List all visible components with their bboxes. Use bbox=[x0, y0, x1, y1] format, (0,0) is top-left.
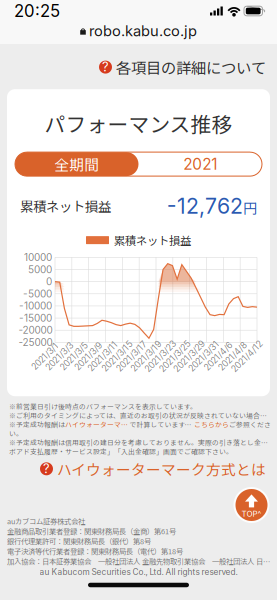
staticText: au Kabucom Securities Co., Ltd. All righ… bbox=[39, 567, 237, 577]
staticText: ハイウォーターマーク方式 bbox=[65, 419, 129, 429]
staticText: -12,762 bbox=[167, 193, 243, 219]
staticText: 2021/3/3 bbox=[42, 351, 77, 362]
staticText: 5000 bbox=[28, 263, 52, 275]
button[interactable]: 2021 bbox=[138, 152, 262, 176]
staticText: パフォーマンス推移 bbox=[44, 108, 232, 138]
staticText: ※ご利用のタイミングによっては、直近のお取引の状況が反映されていない場合がありま… bbox=[9, 410, 271, 420]
staticText: -20000 bbox=[18, 324, 52, 336]
staticText: 2021/3/11 bbox=[84, 351, 122, 362]
staticText: い。 bbox=[9, 428, 23, 438]
staticText: ※前営業日引け後時点のパフォーマンスを表示しています。 bbox=[9, 401, 197, 411]
staticText: 2021/3/9 bbox=[71, 351, 106, 362]
staticText: 10000 bbox=[24, 251, 52, 263]
staticText: 2021/3/19 bbox=[126, 351, 165, 362]
staticText: auカブコム証券株式会社 bbox=[7, 516, 85, 526]
staticText: 銀行代理業許可：関東財務局長（銀代）第8号 bbox=[7, 536, 151, 546]
staticText: ? bbox=[43, 461, 50, 476]
staticText: 電子決済等代行業者登録：関東財務局長（電代）第18号 bbox=[7, 546, 183, 556]
staticText: ハイウォーターマーク方式とは bbox=[57, 458, 266, 479]
staticText: 2021/3/25 bbox=[155, 351, 195, 362]
staticText: 20:25 bbox=[14, 1, 60, 21]
staticText: -25000 bbox=[18, 336, 52, 348]
staticText: 2021/4/12 bbox=[227, 351, 267, 362]
staticText: 0 bbox=[46, 276, 52, 288]
staticText: 2021 bbox=[183, 155, 217, 173]
staticText: で計算しています。手数料については bbox=[129, 419, 194, 429]
staticText: 2021/3/17 bbox=[112, 351, 151, 362]
staticText: 2021/3/1 bbox=[28, 351, 62, 362]
staticText: 全期間 bbox=[54, 153, 99, 175]
staticText: 2021/3/31 bbox=[184, 351, 223, 362]
staticText: 2021/4/6 bbox=[200, 351, 236, 362]
staticText: 2021/3/15 bbox=[98, 351, 137, 362]
staticText: 金融商品取引業者登録：関東財務局長（金商）第61号 bbox=[7, 526, 176, 536]
staticText: ご参照くださ bbox=[229, 419, 271, 429]
staticText: ※予定成功報酬は bbox=[9, 419, 65, 429]
staticText: 各項目の詳細について bbox=[116, 56, 266, 78]
staticText: ? bbox=[102, 59, 109, 74]
staticText: 円 bbox=[243, 197, 257, 218]
staticText: robo.kabu.co.jp bbox=[89, 22, 197, 40]
staticText: 加入協会：日本証券業協会 一般社団法人 金融先物取引業協会 一般社団法人 日本投… bbox=[7, 556, 275, 566]
staticText: -15000 bbox=[19, 312, 52, 324]
staticText: ※予定成功報酬は信用取引の建日分を考慮しておりません。実際の引き落とし金額はPC… bbox=[9, 437, 271, 447]
button[interactable]: ? bbox=[40, 458, 266, 479]
staticText: 2021/3/29 bbox=[169, 351, 209, 362]
button[interactable]: Scroll to top bbox=[233, 487, 269, 523]
staticText: 2021/3/5 bbox=[56, 351, 91, 362]
button[interactable]: ? bbox=[99, 56, 266, 78]
staticText: -5000 bbox=[23, 288, 52, 300]
staticText: ボアド支払履歴・サービス設定」「入出金確認」画面でご確認下さい。 bbox=[9, 446, 233, 456]
staticText: こちらから bbox=[194, 419, 229, 429]
staticText: 累積ネット損益 bbox=[114, 232, 191, 248]
staticText: -10000 bbox=[19, 300, 52, 312]
staticText: 2021/4/8 bbox=[215, 351, 251, 362]
staticText: 2021/3/23 bbox=[140, 351, 180, 362]
staticText: TOP^ bbox=[241, 509, 261, 519]
button[interactable]: 全期間 bbox=[15, 152, 138, 176]
staticText: 累積ネット損益 bbox=[20, 196, 111, 216]
